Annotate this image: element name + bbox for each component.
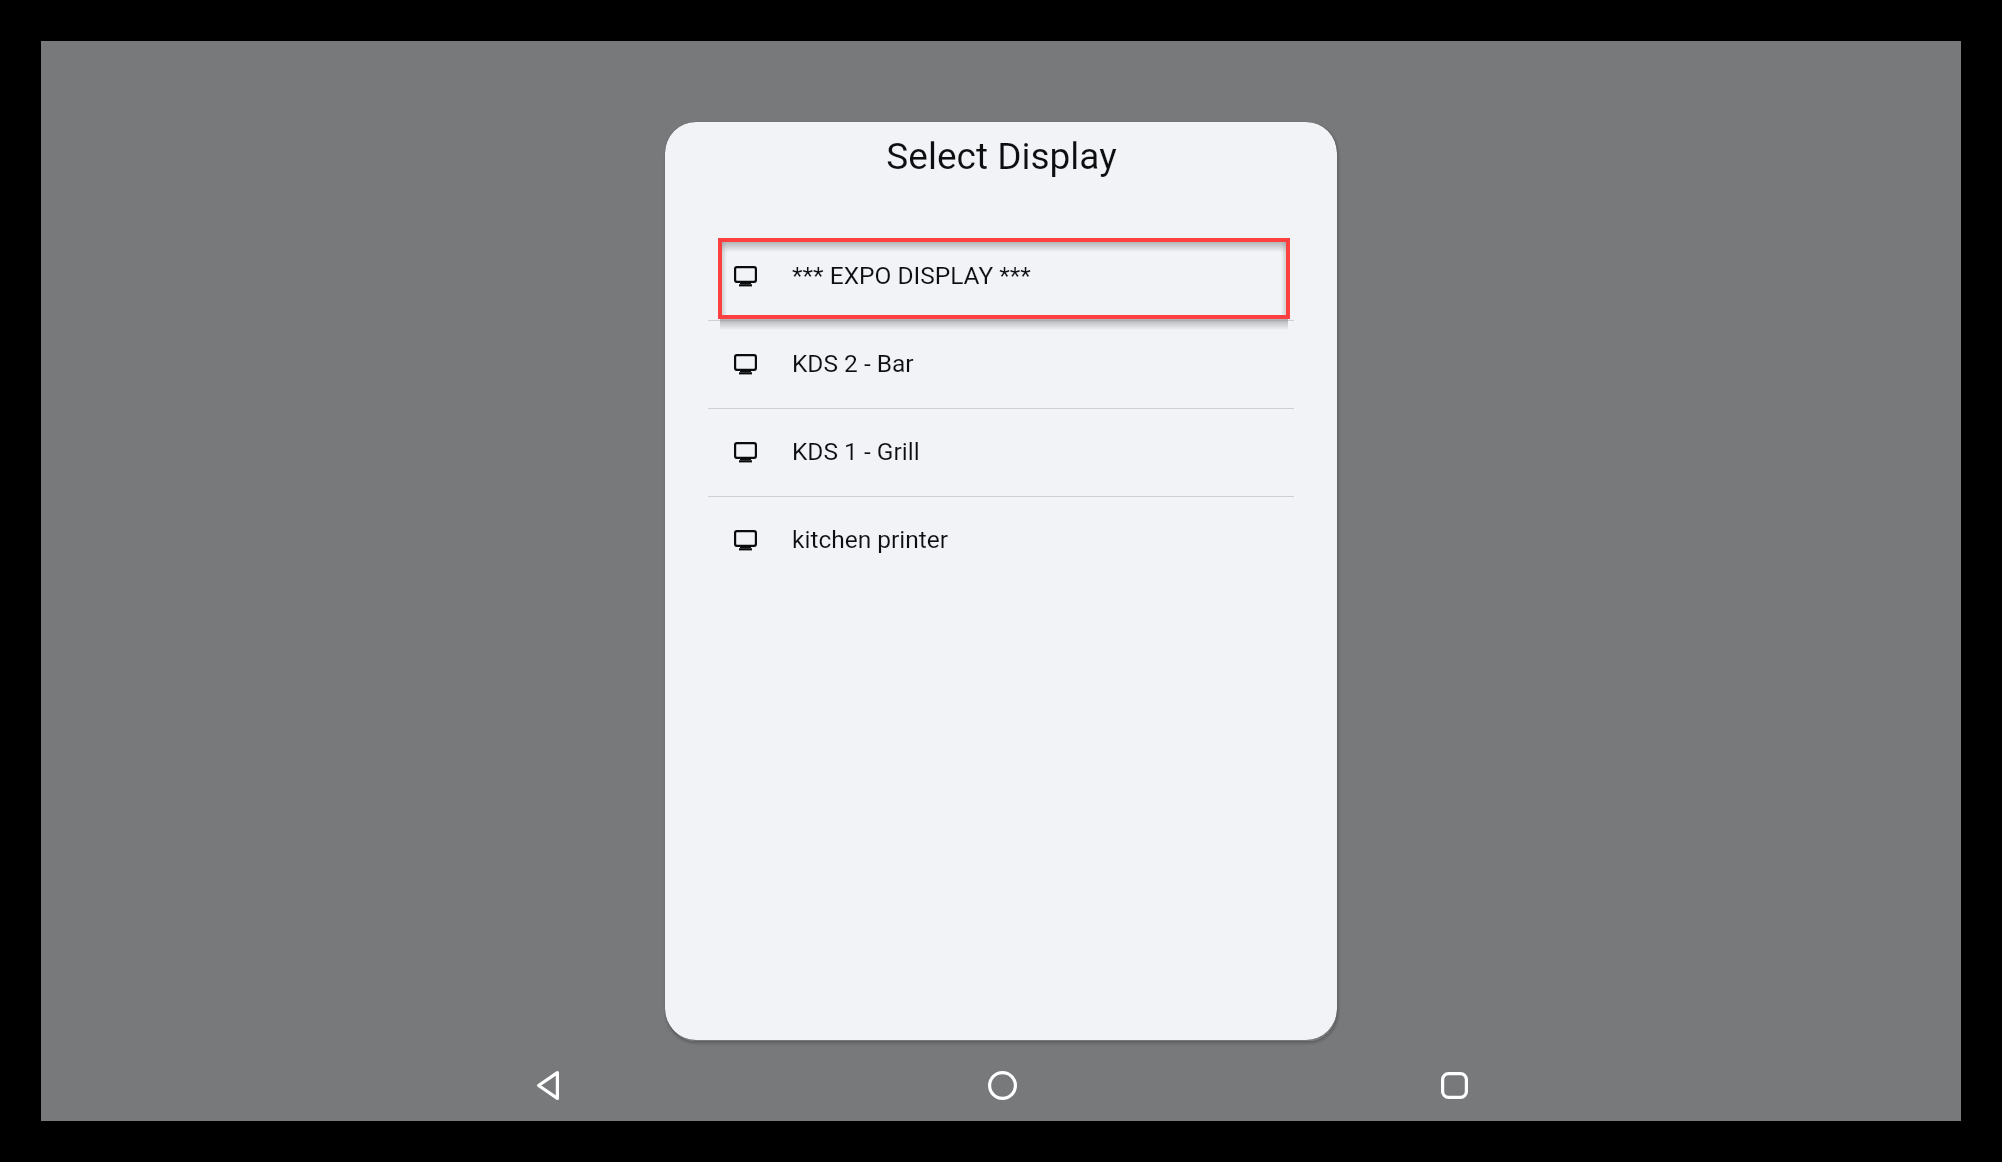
staticText: *** EXPO DISPLAY *** [792, 261, 1031, 290]
staticText: kitchen printer [792, 525, 949, 554]
staticText: KDS 1 - Grill [792, 437, 920, 466]
button[interactable]: KDS 1 - Grill [665, 408, 1337, 496]
button[interactable]: *** EXPO DISPLAY *** [665, 232, 1337, 320]
staticText: Select Display [886, 135, 1117, 178]
button[interactable]: Home [974, 1057, 1030, 1113]
button[interactable]: Back [520, 1057, 576, 1113]
staticText: KDS 2 - Bar [792, 349, 914, 378]
button[interactable]: Recent apps [1426, 1057, 1482, 1113]
button[interactable]: kitchen printer [665, 496, 1337, 584]
button[interactable]: KDS 2 - Bar [665, 320, 1337, 408]
